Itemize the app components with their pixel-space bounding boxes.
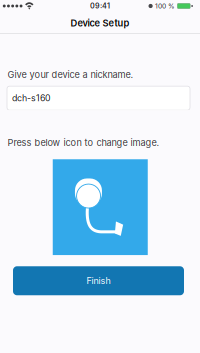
button[interactable]: dch-s160 xyxy=(7,86,190,110)
staticText: Give your device a nickname. xyxy=(7,69,133,80)
staticText: Press below icon to change image. xyxy=(7,137,159,148)
button[interactable]: Change device image xyxy=(53,159,148,255)
staticText: 100 % xyxy=(155,2,175,10)
staticText: dch-s160 xyxy=(12,93,51,103)
staticText: Finish xyxy=(86,275,110,286)
staticText: Device Setup xyxy=(70,17,129,29)
button[interactable]: Finish xyxy=(13,266,184,295)
staticText: 09:41 xyxy=(90,2,110,10)
